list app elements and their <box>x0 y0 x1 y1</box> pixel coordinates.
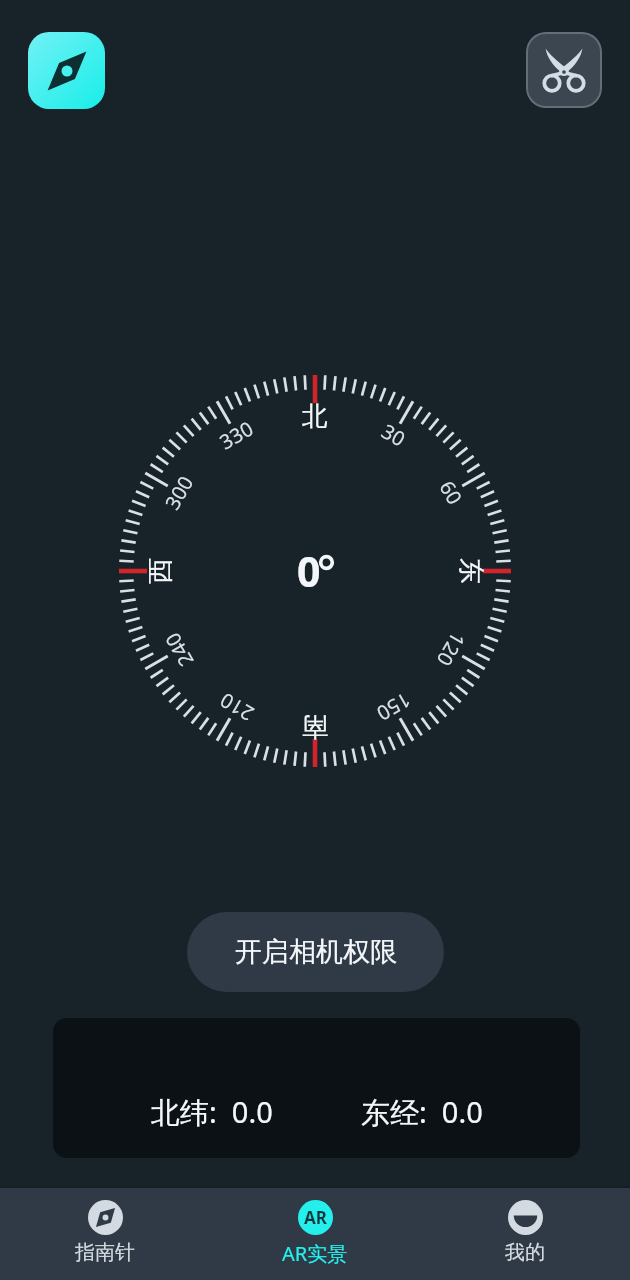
button[interactable]: Compass <box>28 32 105 109</box>
staticText: 东经: 0.0 <box>361 1092 483 1132</box>
button[interactable]: AR <box>210 1188 420 1280</box>
button[interactable]: 我的 <box>420 1188 630 1280</box>
staticText: 我的 <box>505 1240 545 1265</box>
button[interactable]: Screenshot <box>526 32 602 108</box>
staticText: 开启相机权限 <box>235 935 397 969</box>
staticText: AR <box>304 1206 327 1229</box>
button[interactable]: 开启相机权限 <box>187 912 444 992</box>
staticText: AR实景 <box>282 1240 348 1267</box>
button[interactable]: 指南针 <box>0 1188 210 1280</box>
staticText: 指南针 <box>75 1240 135 1265</box>
staticText: 北纬: 0.0 <box>151 1092 273 1132</box>
